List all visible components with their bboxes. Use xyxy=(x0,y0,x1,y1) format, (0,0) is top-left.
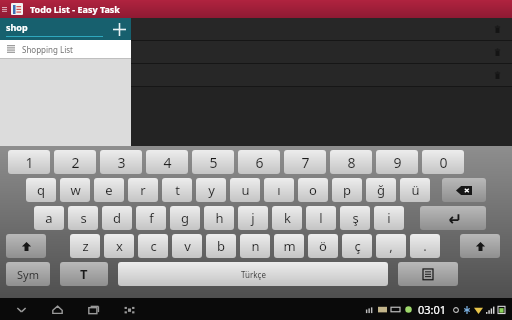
button[interactable]: p xyxy=(332,178,362,202)
button[interactable]: f xyxy=(136,206,166,230)
button[interactable]: Delete xyxy=(492,70,503,81)
button[interactable]: o xyxy=(298,178,328,202)
button[interactable]: i xyxy=(374,206,404,230)
button[interactable]: ç xyxy=(342,234,372,258)
button[interactable]: key xyxy=(6,234,46,258)
button[interactable]: , xyxy=(376,234,406,258)
staticText: a xyxy=(45,209,53,227)
staticText: 3 xyxy=(117,153,126,172)
staticText: r xyxy=(140,181,146,199)
button[interactable]: 3 xyxy=(100,150,142,174)
button[interactable]: Delete xyxy=(0,18,512,40)
button[interactable]: j xyxy=(238,206,268,230)
button[interactable]: b xyxy=(206,234,236,258)
button[interactable]: y xyxy=(196,178,226,202)
button[interactable]: e xyxy=(94,178,124,202)
button[interactable]: w xyxy=(60,178,90,202)
button[interactable]: u xyxy=(230,178,260,202)
button[interactable]: ü xyxy=(400,178,430,202)
button[interactable]: g xyxy=(170,206,200,230)
button[interactable]: Delete xyxy=(492,24,503,35)
staticText: l xyxy=(319,209,323,227)
staticText: z xyxy=(82,237,89,255)
button[interactable]: ğ xyxy=(366,178,396,202)
button[interactable]: . xyxy=(410,234,440,258)
button[interactable]: shop xyxy=(6,18,103,40)
button[interactable]: Delete xyxy=(492,47,503,58)
staticText: u xyxy=(241,181,250,199)
staticText: ç xyxy=(354,237,361,255)
staticText: m xyxy=(283,237,296,255)
button[interactable]: ö xyxy=(308,234,338,258)
button[interactable]: m xyxy=(274,234,304,258)
button[interactable]: 0 xyxy=(422,150,464,174)
button[interactable]: 9 xyxy=(376,150,418,174)
button[interactable]: Shopping List xyxy=(0,40,131,58)
button[interactable]: ı xyxy=(264,178,294,202)
staticText: . xyxy=(423,237,427,255)
staticText: Türkçe xyxy=(241,269,266,280)
button[interactable]: Add task xyxy=(107,18,131,40)
staticText: t xyxy=(175,181,180,199)
button[interactable]: q xyxy=(26,178,56,202)
button[interactable]: d xyxy=(102,206,132,230)
button[interactable]: z xyxy=(70,234,100,258)
button[interactable]: 1 xyxy=(8,150,50,174)
button[interactable]: r xyxy=(128,178,158,202)
staticText: 2 xyxy=(71,153,80,172)
button[interactable]: Home xyxy=(46,299,68,319)
button[interactable]: s xyxy=(68,206,98,230)
button[interactable]: 8 xyxy=(330,150,372,174)
button[interactable]: Sym xyxy=(6,262,50,286)
button[interactable]: Delete xyxy=(0,64,512,86)
staticText: i xyxy=(387,209,391,227)
button[interactable]: v xyxy=(172,234,202,258)
button[interactable]: Recent apps xyxy=(82,299,104,319)
button[interactable]: 5 xyxy=(192,150,234,174)
staticText: 0 xyxy=(439,153,448,172)
staticText: d xyxy=(113,209,121,227)
button[interactable]: key xyxy=(398,262,458,286)
button[interactable]: key xyxy=(460,234,500,258)
button[interactable]: Delete xyxy=(0,41,512,63)
button[interactable]: 2 xyxy=(54,150,96,174)
staticText: w xyxy=(70,181,81,199)
button[interactable]: ş xyxy=(340,206,370,230)
button[interactable]: Menu xyxy=(0,0,8,18)
staticText: k xyxy=(284,209,291,227)
button[interactable]: key xyxy=(60,262,108,286)
button[interactable]: x xyxy=(104,234,134,258)
button[interactable]: Hide keyboard xyxy=(10,299,32,319)
button[interactable]: key xyxy=(442,178,486,202)
staticText: 03:01 xyxy=(418,302,447,317)
staticText: f xyxy=(149,209,154,227)
staticText: Todo List - Easy Task xyxy=(30,3,120,15)
staticText: 5 xyxy=(209,153,218,172)
staticText: h xyxy=(215,209,224,227)
staticText: g xyxy=(181,209,189,227)
staticText: s xyxy=(80,209,87,227)
staticText: ö xyxy=(319,237,327,255)
staticText: q xyxy=(37,181,45,199)
button[interactable]: l xyxy=(306,206,336,230)
staticText: j xyxy=(251,209,255,227)
button[interactable]: a xyxy=(34,206,64,230)
staticText: y xyxy=(208,181,215,199)
button[interactable]: 6 xyxy=(238,150,280,174)
button[interactable]: h xyxy=(204,206,234,230)
staticText: 7 xyxy=(301,153,310,172)
button[interactable]: k xyxy=(272,206,302,230)
staticText: b xyxy=(217,237,225,255)
button[interactable]: 4 xyxy=(146,150,188,174)
button[interactable]: 7 xyxy=(284,150,326,174)
button[interactable]: Türkçe xyxy=(118,262,388,286)
button[interactable]: Screenshot xyxy=(118,299,140,319)
button[interactable]: t xyxy=(162,178,192,202)
staticText: 4 xyxy=(163,153,172,172)
button[interactable]: key xyxy=(420,206,486,230)
button[interactable]: c xyxy=(138,234,168,258)
button[interactable]: n xyxy=(240,234,270,258)
staticText: ş xyxy=(352,209,359,227)
staticText: v xyxy=(184,237,191,255)
staticText: n xyxy=(251,237,260,255)
